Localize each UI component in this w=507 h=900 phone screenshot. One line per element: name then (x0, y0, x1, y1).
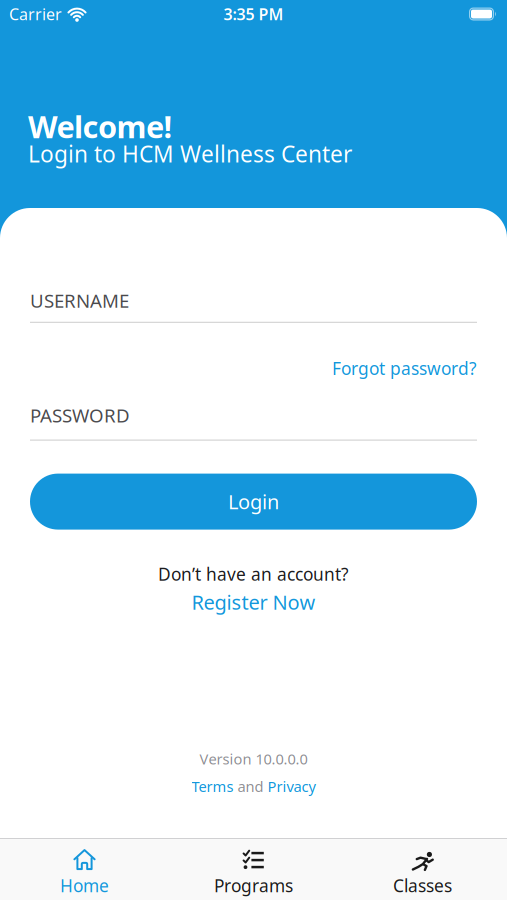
staticText: 3:35 PM (223, 3, 283, 25)
staticText: Carrier (9, 3, 62, 25)
staticText: Forgot password? (332, 357, 477, 380)
staticText: Version 10.0.0.0 (199, 749, 307, 768)
staticText: USERNAME (30, 288, 129, 313)
button[interactable]: Register Now (191, 589, 315, 615)
staticText: Welcome! (28, 106, 172, 147)
button[interactable]: Login (30, 474, 477, 530)
staticText: Programs (214, 874, 293, 897)
staticText: Login (228, 488, 279, 515)
staticText: Home (60, 874, 109, 897)
staticText: Classes (393, 874, 452, 897)
button[interactable]: Terms (191, 776, 233, 796)
button[interactable]: Programs (169, 848, 338, 897)
button[interactable]: Home (0, 848, 169, 897)
button[interactable]: Classes (338, 848, 507, 897)
button[interactable]: Privacy (267, 776, 315, 796)
staticText: Privacy (267, 776, 315, 796)
staticText: Register Now (191, 589, 315, 615)
button[interactable]: Forgot password? (332, 357, 477, 380)
staticText: Terms (191, 776, 233, 796)
staticText: Don’t have an account? (158, 563, 349, 586)
staticText: Login to HCM Wellness Center (28, 139, 352, 169)
staticText: and (237, 776, 263, 796)
staticText: PASSWORD (30, 403, 130, 428)
